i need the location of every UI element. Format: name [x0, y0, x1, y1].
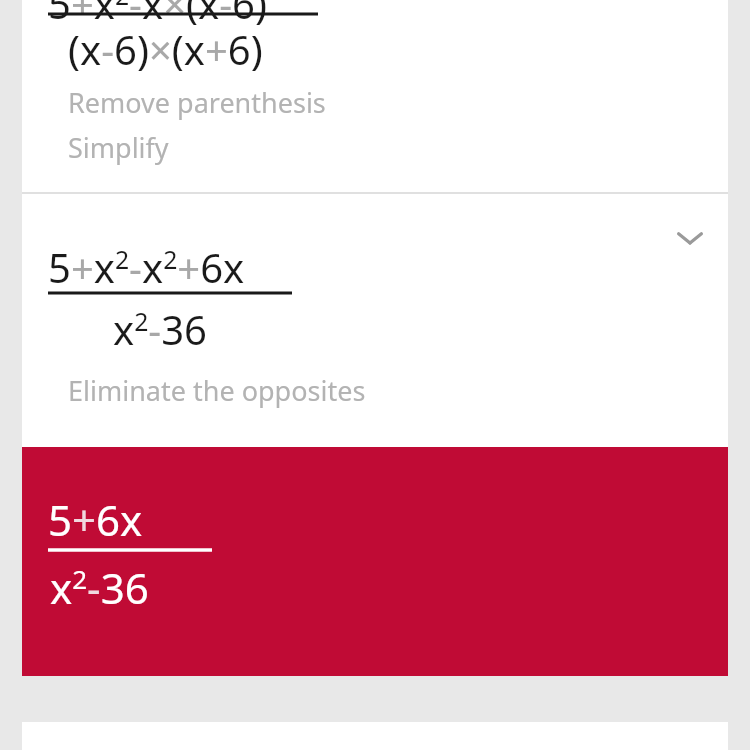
button[interactable]: Expand step: [662, 210, 718, 266]
button[interactable]: 5+6x: [22, 447, 728, 676]
staticText: Simplify: [68, 129, 169, 166]
staticText: 5+x2-x×(x-6): [48, 0, 267, 30]
staticText: x2-36: [50, 559, 149, 616]
staticText: 5+x2-x2+6x: [48, 240, 245, 294]
staticText: 5+6x: [48, 491, 143, 548]
staticText: Eliminate the opposites: [68, 372, 366, 409]
button[interactable]: 5+x2-x×(x-6): [22, 0, 728, 192]
staticText: x2-36: [113, 302, 207, 356]
staticText: Remove parenthesis: [68, 84, 326, 121]
button[interactable]: 5+x2-x2+6x: [22, 194, 728, 447]
staticText: (x-6)×(x+6): [68, 22, 263, 76]
